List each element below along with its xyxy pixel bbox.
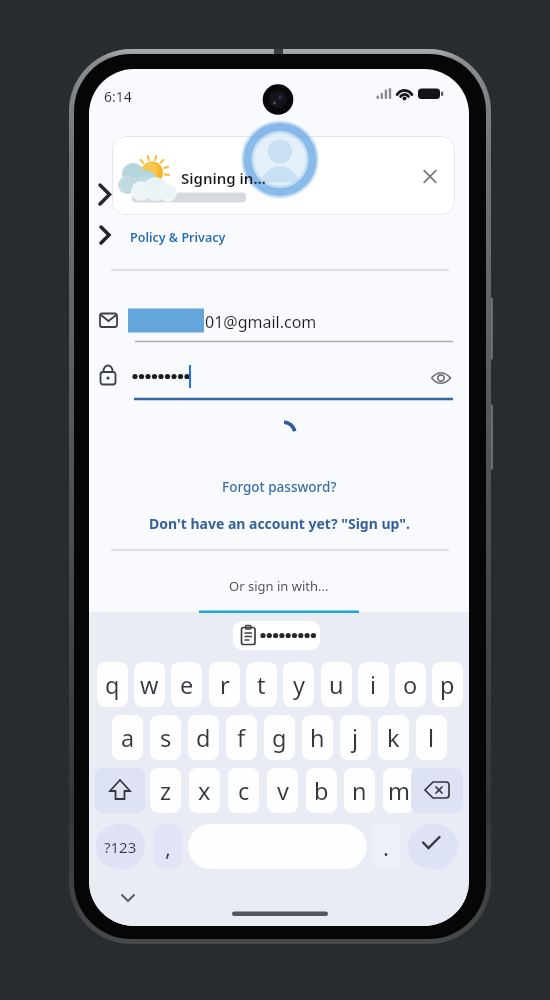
staticText: c [238,775,250,807]
button[interactable]: u [321,662,352,707]
button[interactable]: Forgot password? [222,478,337,496]
staticText: h [310,722,325,754]
button[interactable]: t [246,662,277,707]
button[interactable]: c [228,768,259,813]
staticText: i [370,669,377,701]
staticText: b [314,775,329,807]
button[interactable] [95,768,145,813]
button[interactable] [188,824,367,869]
staticText: g [272,722,287,754]
staticText: r [220,669,230,701]
staticText: p [440,669,455,701]
staticText: x [198,775,211,807]
button[interactable]: ?123 [96,824,145,869]
button[interactable]: f [226,715,257,760]
button[interactable]: n [344,768,375,813]
button[interactable]: h [302,715,333,760]
button[interactable]: g [264,715,295,760]
staticText: u [329,669,344,701]
staticText: , [165,832,171,862]
button[interactable]: Policy & Privacy [130,229,226,246]
button[interactable] [112,136,455,215]
button[interactable]: e [171,662,202,707]
button[interactable]: w [134,662,165,707]
staticText: n [352,775,367,807]
button[interactable]: o [395,662,426,707]
staticText: v [277,775,289,807]
button[interactable] [429,366,453,390]
button[interactable] [233,621,320,650]
button[interactable]: x [189,768,220,813]
button[interactable]: y [283,662,314,707]
staticText: s [160,722,172,754]
button[interactable]: s [150,715,181,760]
button[interactable]: v [267,768,298,813]
button[interactable]: a [112,715,143,760]
button[interactable]: p [432,662,463,707]
staticText: k [387,722,400,754]
button[interactable]: , [154,824,182,869]
staticText: a [121,722,135,754]
staticText: Signing in... [181,168,266,188]
staticText: q [105,669,120,701]
staticText: l [428,722,435,754]
staticText: y [293,669,305,701]
button[interactable]: i [358,662,389,707]
staticText: z [160,775,172,807]
button[interactable]: q [97,662,128,707]
button[interactable]: k [378,715,409,760]
staticText: e [180,669,194,701]
button[interactable]: z [150,768,181,813]
staticText: 01@gmail.com [205,311,317,333]
button[interactable] [128,305,454,339]
staticText: ?123 [104,837,137,857]
staticText: d [196,722,211,754]
button[interactable]: j [340,715,371,760]
button[interactable] [411,768,463,813]
button[interactable] [419,165,441,187]
button[interactable]: d [188,715,219,760]
button[interactable]: l [416,715,447,760]
button[interactable]: . [372,824,400,869]
button[interactable]: m [383,768,414,813]
staticText: . [383,832,389,862]
button[interactable]: r [209,662,240,707]
staticText: j [352,722,359,754]
button[interactable]: b [306,768,337,813]
button[interactable]: Or sign in with... [229,577,329,595]
staticText: o [403,669,418,701]
staticText: 6:14 [104,87,132,106]
staticText: t [257,669,266,701]
button[interactable] [408,824,458,869]
staticText: w [140,669,159,701]
staticText: f [237,722,246,754]
button[interactable]: Don't have an account yet? "Sign up". [149,514,410,533]
button[interactable] [128,363,454,397]
staticText: m [388,775,410,807]
